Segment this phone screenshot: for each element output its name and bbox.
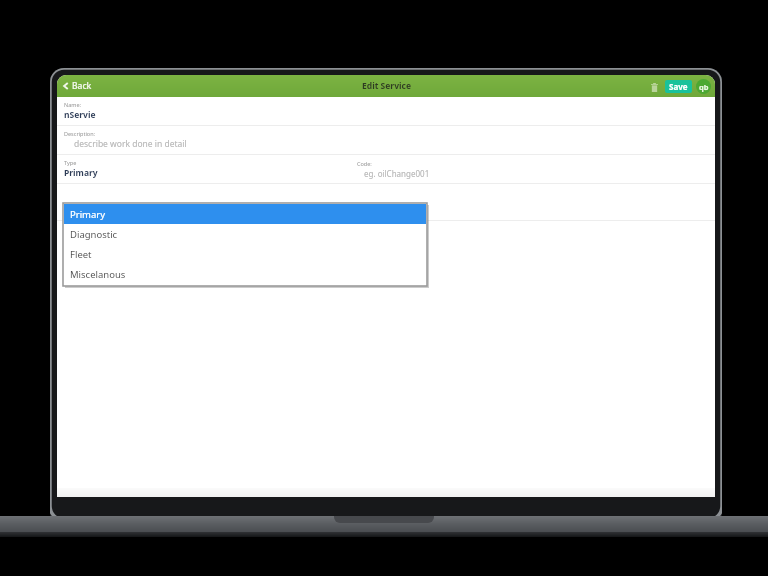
staticText: Primary: [64, 167, 98, 179]
staticText: Type: [64, 159, 77, 166]
staticText: Primary: [70, 208, 106, 221]
button[interactable]: Name:: [57, 97, 715, 125]
button[interactable]: QuickBooks: [696, 79, 711, 94]
button[interactable]: Back: [57, 80, 100, 92]
staticText: qb: [699, 82, 709, 92]
staticText: Fleet: [70, 248, 92, 261]
button[interactable]: Primary: [64, 204, 426, 224]
staticText: Save: [669, 81, 688, 92]
button[interactable]: Description:: [57, 126, 715, 154]
staticText: Code:: [357, 160, 372, 167]
staticText: eg. oilChange001: [364, 168, 430, 179]
staticText: Name:: [64, 101, 81, 108]
button[interactable]: Diagnostic: [64, 224, 426, 244]
staticText: Back: [72, 80, 92, 92]
staticText: Miscelanous: [70, 268, 126, 281]
button[interactable]: Fleet: [64, 244, 426, 264]
button[interactable]: Save: [665, 80, 692, 93]
staticText: Diagnostic: [70, 228, 118, 241]
staticText: describe work done in detail: [74, 138, 187, 150]
staticText: Description:: [64, 130, 96, 137]
staticText: Edit Service: [362, 80, 411, 92]
staticText: nServie: [64, 109, 96, 121]
button[interactable]: Miscelanous: [64, 264, 426, 284]
button[interactable]: Delete: [647, 80, 661, 94]
